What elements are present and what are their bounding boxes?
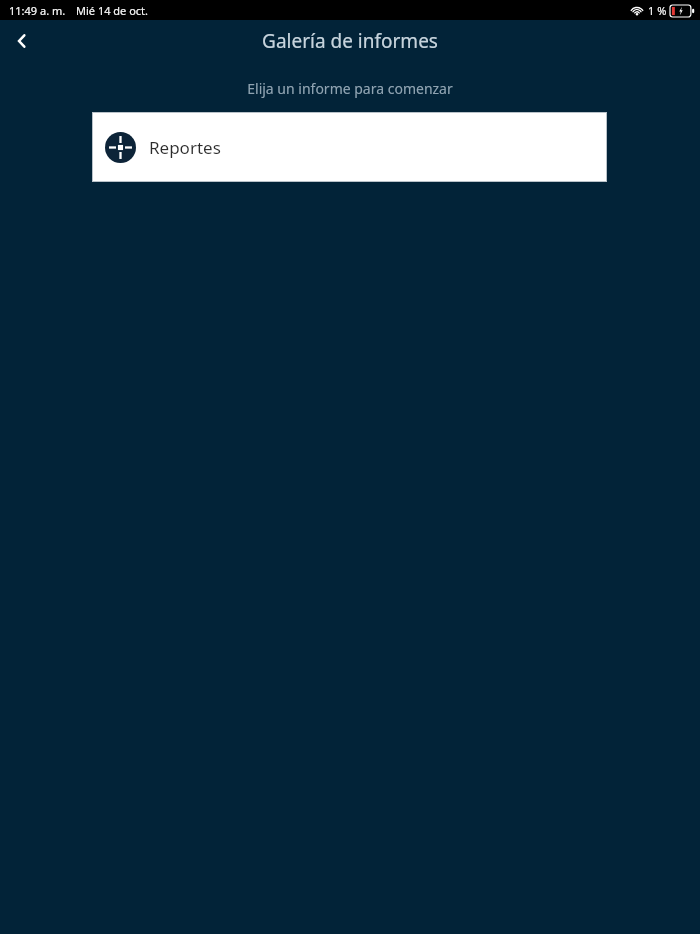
- staticText: Galería de informes: [262, 28, 438, 54]
- staticText: 11:49 a. m.: [9, 3, 66, 18]
- staticText: Mié 14 de oct.: [76, 3, 149, 18]
- button[interactable]: Atrás: [0, 20, 46, 62]
- button[interactable]: Reportes: [92, 112, 607, 182]
- staticText: 1 %: [648, 3, 667, 18]
- staticText: Elija un informe para comenzar: [0, 79, 700, 98]
- staticText: Reportes: [149, 136, 221, 159]
